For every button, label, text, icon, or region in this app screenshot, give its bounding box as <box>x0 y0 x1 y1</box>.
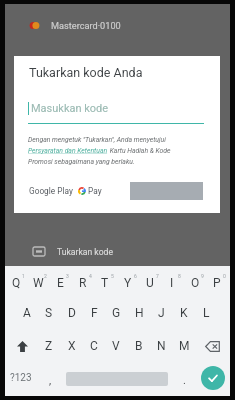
staticText: V <box>112 339 120 353</box>
button[interactable]: G <box>105 298 127 328</box>
button[interactable]: V <box>105 331 127 361</box>
button[interactable]: Backspace <box>195 331 229 361</box>
staticText: E <box>57 276 64 290</box>
button[interactable]: H <box>128 298 150 328</box>
staticText: Promosi sebagaimana yang berlaku. <box>28 158 135 166</box>
button[interactable]: O <box>184 268 206 298</box>
staticText: Persyaratan dan Ketentuan <box>28 147 108 155</box>
staticText: H <box>135 306 144 320</box>
button[interactable]: U <box>139 268 161 298</box>
button[interactable]: R <box>72 268 94 298</box>
button[interactable]: M <box>173 331 195 361</box>
staticText: Kartu Hadiah & Kode <box>108 147 171 155</box>
button[interactable]: J <box>150 298 172 328</box>
button[interactable]: Symbols <box>4 362 38 394</box>
staticText: 6 <box>134 273 137 279</box>
staticText: Mastercard·0100 <box>51 20 121 31</box>
staticText: Q <box>12 276 21 290</box>
staticText: N <box>157 339 166 353</box>
staticText: Tukarkan kode <box>57 247 113 257</box>
staticText: I <box>170 276 174 290</box>
staticText: T <box>101 276 109 290</box>
staticText: K <box>180 306 188 320</box>
staticText: S <box>45 306 53 320</box>
staticText: . <box>183 374 186 387</box>
button[interactable]: Q <box>5 268 27 298</box>
staticText: O <box>191 276 200 290</box>
staticText: , <box>49 374 52 387</box>
button[interactable]: W <box>27 268 49 298</box>
staticText: P <box>213 276 221 290</box>
button[interactable]: X <box>61 331 83 361</box>
button[interactable]: Y <box>117 268 139 298</box>
button[interactable]: Tukarkan kode <box>33 242 113 261</box>
button[interactable]: Period <box>173 364 195 396</box>
staticText: Google Play <box>29 186 73 196</box>
staticText: Dengan mengetuk "Tukarkan", Anda menyetu… <box>28 136 166 144</box>
staticText: F <box>91 306 98 320</box>
staticText: 4 <box>89 273 92 279</box>
staticText: G <box>112 306 121 320</box>
staticText: B <box>135 339 143 353</box>
staticText: 0 <box>223 273 226 279</box>
staticText: 3 <box>66 273 69 279</box>
button[interactable]: I <box>161 268 183 298</box>
button[interactable]: T <box>94 268 116 298</box>
button[interactable]: Shift <box>5 331 39 361</box>
staticText: L <box>203 306 210 320</box>
button[interactable]: C <box>83 331 105 361</box>
staticText: 8 <box>178 273 181 279</box>
staticText: Pay <box>88 186 102 196</box>
staticText: ?123 <box>10 372 32 384</box>
button[interactable]: K <box>173 298 195 328</box>
button[interactable]: Enter <box>198 362 228 394</box>
staticText: U <box>146 276 154 290</box>
staticText: 2 <box>44 273 47 279</box>
button[interactable]: D <box>61 298 83 328</box>
staticText: D <box>68 306 76 320</box>
staticText: X <box>68 339 76 353</box>
staticText: J <box>158 306 165 320</box>
staticText: R <box>79 276 87 290</box>
staticText: Masukkan kode <box>31 102 109 115</box>
button[interactable]: Z <box>38 331 60 361</box>
button[interactable]: E <box>49 268 71 298</box>
staticText: 7 <box>156 273 159 279</box>
staticText: 9 <box>201 273 204 279</box>
staticText: W <box>33 276 44 290</box>
button[interactable]: F <box>83 298 105 328</box>
staticText: Tukarkan kode Anda <box>29 65 143 80</box>
staticText: 5 <box>111 273 114 279</box>
button[interactable]: N <box>150 331 172 361</box>
staticText: 1 <box>22 273 25 279</box>
button[interactable]: P <box>206 268 228 298</box>
button[interactable]: L <box>195 298 217 328</box>
button[interactable]: Mastercard·0100 <box>29 17 121 34</box>
staticText: Y <box>124 276 132 290</box>
staticText: Z <box>45 339 53 353</box>
button[interactable]: Comma <box>39 364 61 396</box>
staticText: A <box>23 306 31 320</box>
button[interactable]: A <box>16 298 38 328</box>
staticText: C <box>90 339 98 353</box>
staticText: M <box>179 339 190 353</box>
button[interactable]: S <box>38 298 60 328</box>
button[interactable]: B <box>128 331 150 361</box>
